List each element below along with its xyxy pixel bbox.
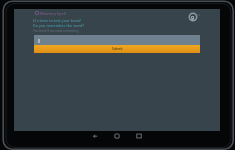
staticText: Do you remember the word? [33, 23, 84, 28]
staticText: You have 9 seconds remaining [33, 29, 79, 33]
button[interactable]: Submit [34, 45, 200, 53]
staticText: 9 [191, 14, 195, 21]
button[interactable]: Home [112, 131, 122, 141]
staticText: Submit [112, 47, 123, 51]
button[interactable]: Memory Spell [34, 10, 66, 16]
button[interactable] [34, 35, 200, 45]
staticText: Memory Spell [40, 11, 66, 16]
button[interactable]: Back [90, 131, 100, 141]
button[interactable]: Recent apps [134, 131, 144, 141]
staticText: It's time to test your brain! [33, 18, 82, 23]
button[interactable]: Time remaining [188, 12, 198, 22]
